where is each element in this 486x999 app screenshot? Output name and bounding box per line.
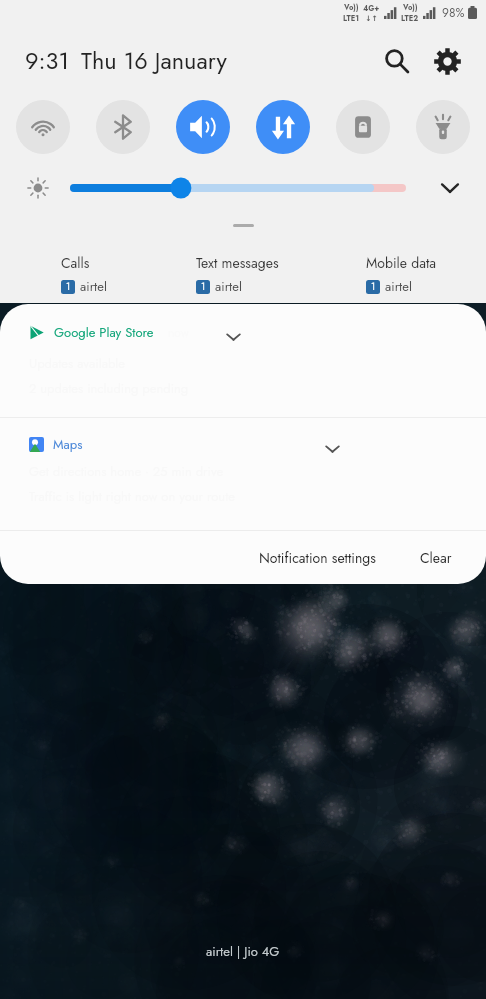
button[interactable]: Calls	[61, 253, 107, 296]
button[interactable]: Notification settings	[251, 538, 384, 578]
button[interactable]: Brightness	[70, 175, 406, 201]
staticText: Google Play Store	[54, 323, 154, 342]
staticText: airtel	[80, 277, 107, 296]
button[interactable]: Auto rotate	[336, 100, 390, 154]
button[interactable]: Settings	[426, 40, 468, 82]
staticText: airtel	[385, 277, 412, 296]
button[interactable]: Expand notification	[319, 435, 345, 461]
button[interactable]: Search	[376, 40, 418, 82]
staticText: 4G+	[363, 3, 380, 14]
staticText: 1	[201, 280, 206, 294]
button[interactable]: Expand notification	[220, 323, 246, 349]
staticText: LTE2	[401, 13, 419, 24]
staticText: airtel	[215, 277, 242, 296]
staticText: Vo))	[344, 2, 359, 13]
button[interactable]: Sound	[176, 100, 230, 154]
button[interactable]: Google Play Store	[0, 304, 486, 417]
staticText: 98%	[442, 4, 465, 21]
staticText: 9:31	[25, 44, 69, 78]
staticText: Clear	[420, 548, 452, 568]
staticText: 1	[66, 280, 71, 294]
button[interactable]: Flashlight	[416, 100, 470, 154]
button[interactable]: Mobile data	[366, 253, 437, 296]
staticText: airtel | Jio 4G	[206, 942, 280, 961]
staticText: Maps	[53, 435, 83, 454]
button[interactable]: Clear	[412, 538, 460, 578]
staticText: Thu 16 January	[81, 44, 227, 78]
button[interactable]: Bluetooth	[96, 100, 150, 154]
button[interactable]: Maps	[0, 418, 486, 530]
staticText: Notification settings	[259, 548, 376, 568]
button[interactable]: Text messages	[196, 253, 279, 296]
staticText: Mobile data	[366, 253, 437, 273]
button[interactable]: Wi-Fi	[16, 100, 70, 154]
staticText: Text messages	[196, 253, 279, 273]
staticText: Calls	[61, 253, 90, 273]
staticText: LTE1	[343, 13, 359, 24]
button[interactable]: Expand	[432, 172, 468, 204]
staticText: Vo))	[403, 2, 418, 13]
staticText: 1	[371, 280, 376, 294]
button[interactable]: Mobile data	[256, 100, 310, 154]
staticText: ↓↑	[365, 14, 378, 23]
